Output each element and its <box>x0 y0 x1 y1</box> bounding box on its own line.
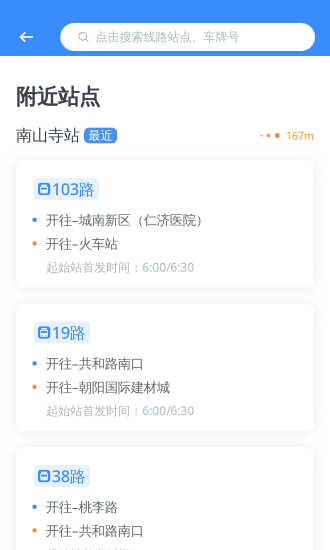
staticText: 起始站首发时间：6:00/6:30 <box>46 259 194 275</box>
staticText: 开往–城南新区（仁济医院） <box>46 211 209 229</box>
staticText: 点击搜索线路站点、车牌号 <box>95 30 239 44</box>
staticText: 开往–桃李路 <box>46 498 118 516</box>
staticText: 19路 <box>52 322 86 343</box>
button[interactable]: 103路 <box>16 160 314 287</box>
staticText: 开往–共和路南口 <box>46 354 144 372</box>
staticText: 开往–朝阳国际建材城 <box>46 378 170 396</box>
button[interactable]: Back <box>0 18 60 56</box>
button[interactable]: 19路 <box>16 303 314 431</box>
button[interactable]: 38路 <box>16 447 314 550</box>
staticText: 起始站首发时间：6:00/6:30 <box>46 546 194 550</box>
staticText: 开往–共和路南口 <box>46 521 144 539</box>
staticText: 起始站首发时间：6:00/6:30 <box>46 402 194 418</box>
staticText: 103路 <box>52 178 95 200</box>
staticText: 开往–火车站 <box>46 234 118 252</box>
staticText: 38路 <box>52 465 86 487</box>
button[interactable]: 点击搜索线路站点、车牌号 <box>60 23 315 51</box>
staticText: 南山寺站 <box>16 126 80 145</box>
staticText: 167m <box>286 128 314 143</box>
staticText: 附近站点 <box>16 84 100 110</box>
staticText: 最近 <box>89 128 113 143</box>
